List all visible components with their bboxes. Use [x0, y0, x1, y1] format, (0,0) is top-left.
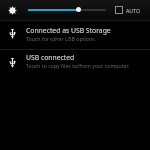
button[interactable]: AUTO: [112, 0, 140, 20]
staticText: Touch to copy files to/from your compute…: [26, 62, 130, 69]
staticText: AUTO: [126, 7, 140, 14]
staticText: Connected as USB Storage: [26, 26, 111, 35]
button[interactable]: Connected as USB Storage: [0, 21, 150, 49]
button[interactable]: USB connected: [0, 50, 150, 78]
button[interactable]: Brightness: [5, 0, 19, 20]
staticText: USB connected: [26, 53, 75, 62]
button[interactable]: Brightness slider: [24, 0, 110, 20]
staticText: Touch for other USB options: [26, 35, 95, 42]
